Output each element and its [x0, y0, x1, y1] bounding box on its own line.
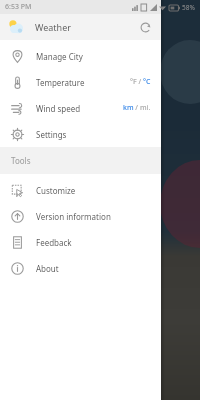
button[interactable]: About — [0, 255, 161, 281]
staticText: Temperature — [36, 77, 85, 88]
button[interactable]: Manage City — [0, 43, 161, 69]
staticText: About — [36, 263, 59, 274]
staticText: 58% — [182, 3, 195, 12]
staticText: 6:53 PM — [5, 2, 32, 12]
button[interactable]: Temperature — [0, 69, 161, 95]
button[interactable]: Refresh — [137, 19, 153, 35]
button[interactable]: km / mi. — [121, 100, 153, 116]
button[interactable]: Weather — [0, 14, 161, 40]
button[interactable]: Version information — [0, 203, 161, 229]
staticText: Version information — [36, 211, 111, 222]
button[interactable]: Wind speed — [0, 95, 161, 121]
button[interactable]: Feedback — [0, 229, 161, 255]
staticText: Tools — [11, 155, 31, 166]
button[interactable]: °F / °C — [128, 74, 153, 90]
staticText: Wind speed — [36, 103, 81, 114]
staticText: Customize — [36, 185, 76, 196]
staticText: Manage City — [36, 51, 83, 62]
staticText: Settings — [36, 129, 67, 140]
staticText: °F / °C — [130, 77, 151, 87]
staticText: Weather — [35, 21, 71, 33]
button[interactable]: Settings — [0, 121, 161, 147]
staticText: Feedback — [36, 237, 72, 248]
button[interactable]: Customize — [0, 177, 161, 203]
staticText: km / mi. — [123, 103, 151, 113]
